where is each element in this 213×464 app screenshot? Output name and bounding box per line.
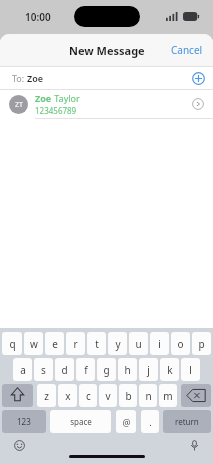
button[interactable]: Add contact bbox=[187, 67, 209, 89]
staticText: . bbox=[149, 416, 152, 428]
button[interactable]: To: bbox=[0, 67, 213, 89]
staticText: b bbox=[125, 389, 132, 403]
staticText: return bbox=[175, 416, 199, 427]
button[interactable]: @ bbox=[116, 410, 136, 433]
staticText: Taylor bbox=[52, 92, 80, 104]
staticText: v bbox=[105, 389, 111, 403]
button[interactable]: z bbox=[37, 384, 56, 407]
staticText: t bbox=[95, 337, 99, 351]
button[interactable]: ZT bbox=[0, 90, 213, 118]
button[interactable]: c bbox=[79, 384, 97, 407]
button[interactable]: d bbox=[55, 358, 74, 381]
staticText: @ bbox=[122, 416, 131, 428]
staticText: 123 bbox=[17, 416, 31, 427]
button[interactable]: t bbox=[87, 332, 106, 355]
button[interactable]: r bbox=[66, 332, 85, 355]
staticText: u bbox=[135, 337, 142, 351]
button[interactable]: . bbox=[141, 410, 159, 433]
staticText: Cancel bbox=[171, 43, 203, 57]
staticText: d bbox=[61, 363, 68, 377]
staticText: x bbox=[65, 389, 71, 403]
staticText: space bbox=[70, 416, 92, 427]
staticText: y bbox=[115, 337, 121, 351]
button[interactable]: a bbox=[13, 358, 32, 381]
button[interactable]: j bbox=[139, 358, 158, 381]
button[interactable]: Emoji bbox=[11, 437, 27, 453]
button[interactable]: o bbox=[171, 332, 190, 355]
staticText: New Message bbox=[69, 43, 145, 58]
button[interactable]: e bbox=[45, 332, 64, 355]
staticText: h bbox=[124, 363, 131, 377]
staticText: o bbox=[177, 337, 184, 351]
button[interactable]: w bbox=[24, 332, 43, 355]
staticText: q bbox=[9, 337, 16, 351]
staticText: g bbox=[103, 363, 110, 377]
staticText: ZT bbox=[15, 100, 23, 110]
button[interactable]: u bbox=[129, 332, 148, 355]
button[interactable]: return bbox=[163, 410, 211, 433]
button[interactable]: Shift bbox=[2, 384, 33, 407]
button[interactable]: n bbox=[139, 384, 157, 407]
button[interactable]: h bbox=[118, 358, 137, 381]
staticText: l bbox=[189, 363, 192, 377]
button[interactable]: Backspace bbox=[181, 384, 211, 407]
staticText: r bbox=[73, 337, 78, 351]
staticText: j bbox=[147, 363, 150, 377]
button[interactable]: b bbox=[119, 384, 137, 407]
button[interactable]: i bbox=[150, 332, 169, 355]
staticText: i bbox=[158, 337, 161, 351]
button[interactable]: space bbox=[50, 410, 111, 433]
staticText: n bbox=[145, 389, 152, 403]
button[interactable]: 123 bbox=[2, 410, 46, 433]
staticText: w bbox=[30, 337, 38, 351]
button[interactable]: f bbox=[76, 358, 95, 381]
button[interactable]: s bbox=[34, 358, 53, 381]
button[interactable]: p bbox=[192, 332, 211, 355]
staticText: 10:00 bbox=[25, 10, 51, 24]
staticText: k bbox=[167, 363, 173, 377]
button[interactable]: l bbox=[181, 358, 200, 381]
button[interactable]: y bbox=[108, 332, 127, 355]
staticText: z bbox=[44, 389, 49, 403]
staticText: 123456789 bbox=[35, 105, 77, 116]
button[interactable]: q bbox=[2, 332, 22, 355]
button[interactable]: Cancel bbox=[161, 36, 213, 64]
staticText: To: bbox=[12, 72, 27, 84]
staticText: Zoe bbox=[27, 72, 44, 84]
staticText: Zoe bbox=[35, 92, 52, 104]
button[interactable]: g bbox=[97, 358, 116, 381]
staticText: e bbox=[52, 337, 58, 351]
staticText: m bbox=[163, 389, 173, 403]
button[interactable]: m bbox=[159, 384, 177, 407]
button[interactable]: x bbox=[58, 384, 77, 407]
staticText: f bbox=[84, 363, 88, 377]
button[interactable]: k bbox=[160, 358, 179, 381]
button[interactable]: Dictation bbox=[186, 437, 202, 453]
button[interactable]: v bbox=[99, 384, 117, 407]
staticText: s bbox=[41, 363, 46, 377]
staticText: c bbox=[86, 389, 91, 403]
button[interactable]: Contact details bbox=[186, 92, 210, 116]
staticText: a bbox=[20, 363, 26, 377]
staticText: p bbox=[198, 337, 205, 351]
